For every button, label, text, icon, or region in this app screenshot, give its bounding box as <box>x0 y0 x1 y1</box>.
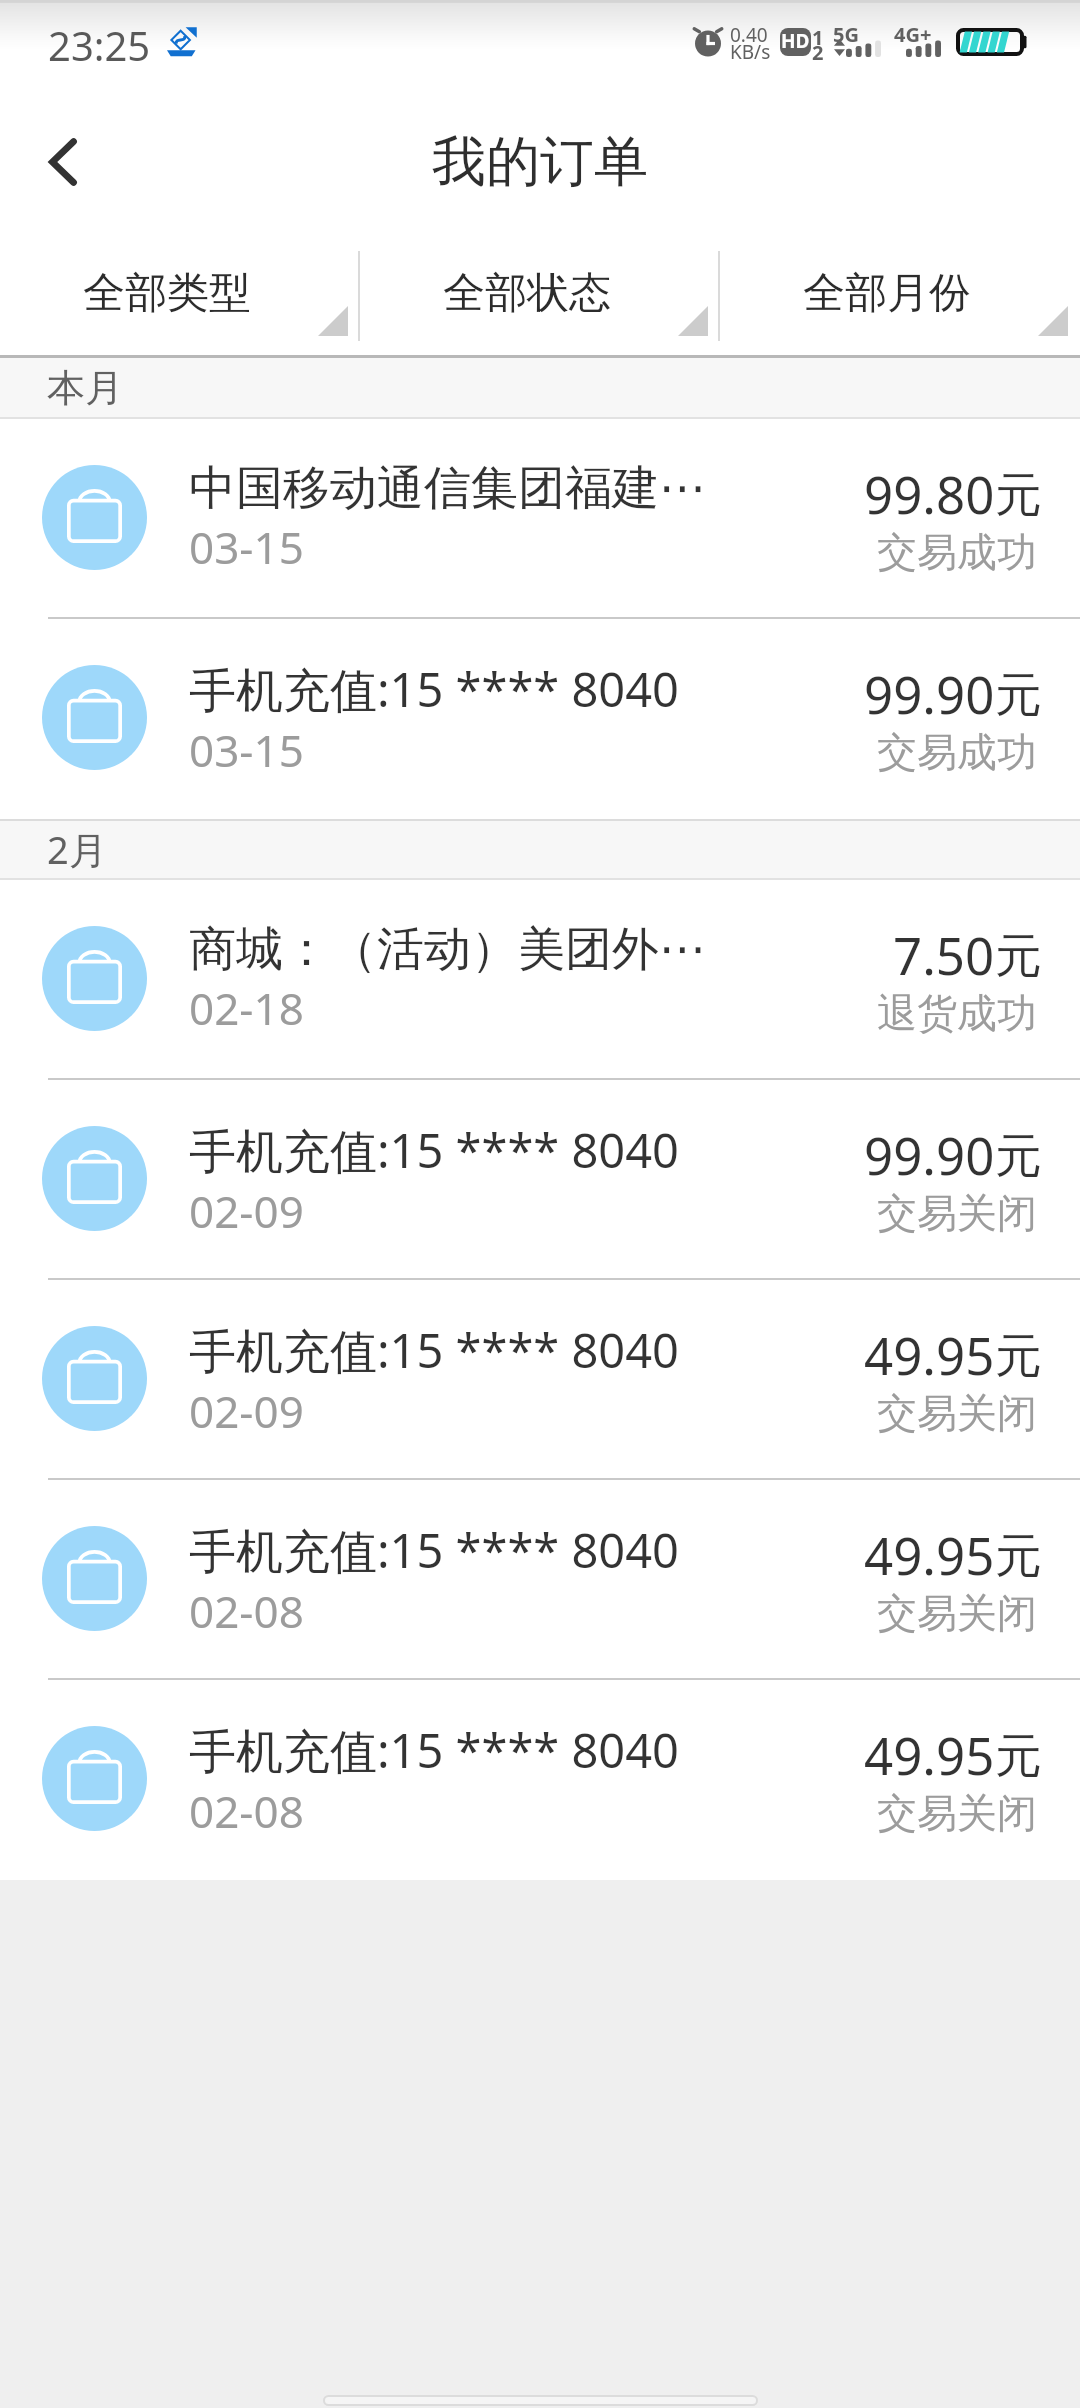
staticText: 手机充值:15 **** 8040 <box>189 1518 679 1582</box>
staticText: 交易关闭 <box>877 1588 1037 1638</box>
staticText: 交易成功 <box>877 727 1037 777</box>
button[interactable]: 手机充值:15 **** 8040 <box>0 1080 1080 1280</box>
staticText: 交易关闭 <box>877 1188 1037 1238</box>
staticText: 23:25 <box>48 18 151 72</box>
staticText: 本月 <box>47 364 123 412</box>
staticText: 02-09 <box>189 1381 304 1441</box>
staticText: 2月 <box>47 823 107 875</box>
staticText: 0.40 <box>730 22 768 48</box>
staticText: 商城：（活动）美团外⋯ <box>189 920 706 979</box>
staticText: 全部类型 <box>83 267 251 320</box>
button[interactable]: Back <box>8 107 118 217</box>
staticText: 1 <box>812 24 824 51</box>
staticText: 02-08 <box>189 1781 304 1841</box>
button[interactable]: 商城：（活动）美团外⋯ <box>0 880 1080 1080</box>
button[interactable]: 手机充值:15 **** 8040 <box>0 1680 1080 1880</box>
staticText: 中国移动通信集团福建⋯ <box>189 459 706 518</box>
button[interactable]: 中国移动通信集团福建⋯ <box>0 419 1080 619</box>
button[interactable]: 全部月份 <box>720 240 1080 358</box>
staticText: 手机充值:15 **** 8040 <box>189 1118 679 1182</box>
button[interactable]: 全部类型 <box>0 240 360 358</box>
staticText: 4G+ <box>894 21 932 48</box>
staticText: 元 <box>995 927 1042 986</box>
staticText: 2 <box>812 39 824 66</box>
staticText: 元 <box>995 466 1042 525</box>
button[interactable]: 手机充值:15 **** 8040 <box>0 1280 1080 1480</box>
staticText: 02-08 <box>189 1581 304 1641</box>
staticText: 99.90 <box>864 1120 995 1189</box>
staticText: 元 <box>995 1527 1042 1586</box>
staticText: 7.50 <box>893 920 995 989</box>
staticText: 退货成功 <box>877 988 1037 1038</box>
staticText: 02-18 <box>189 978 304 1038</box>
staticText: 我的订单 <box>432 128 648 196</box>
staticText: KB/s <box>730 39 771 65</box>
staticText: 02-09 <box>189 1181 304 1241</box>
staticText: 全部月份 <box>803 267 971 320</box>
staticText: 元 <box>995 666 1042 725</box>
staticText: 5G <box>833 21 859 48</box>
staticText: 手机充值:15 **** 8040 <box>189 1318 679 1382</box>
staticText: 49.95 <box>864 1520 995 1589</box>
staticText: 元 <box>995 1127 1042 1186</box>
staticText: 99.80 <box>864 459 995 528</box>
staticText: 交易关闭 <box>877 1388 1037 1438</box>
button[interactable]: 全部状态 <box>360 240 720 358</box>
staticText: 49.95 <box>864 1320 995 1389</box>
staticText: 99.90 <box>864 659 995 728</box>
staticText: 手机充值:15 **** 8040 <box>189 657 679 721</box>
staticText: 03-15 <box>189 517 304 577</box>
staticText: 03-15 <box>189 720 304 780</box>
staticText: 交易关闭 <box>877 1788 1037 1838</box>
button[interactable]: 手机充值:15 **** 8040 <box>0 619 1080 819</box>
staticText: HD <box>781 28 810 54</box>
button[interactable]: 手机充值:15 **** 8040 <box>0 1480 1080 1680</box>
staticText: 全部状态 <box>443 267 611 320</box>
staticText: 手机充值:15 **** 8040 <box>189 1718 679 1782</box>
staticText: 元 <box>995 1727 1042 1786</box>
staticText: 交易成功 <box>877 527 1037 577</box>
staticText: 49.95 <box>864 1720 995 1789</box>
staticText: 元 <box>995 1327 1042 1386</box>
